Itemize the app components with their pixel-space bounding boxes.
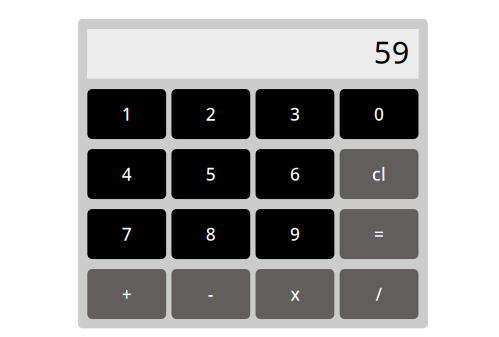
- staticText: 0: [374, 102, 384, 125]
- staticText: 1: [122, 102, 132, 125]
- staticText: /: [376, 282, 383, 305]
- staticText: 3: [290, 102, 300, 125]
- staticText: 59: [374, 31, 410, 72]
- button[interactable]: 0: [340, 89, 418, 139]
- staticText: 7: [122, 222, 132, 245]
- button[interactable]: 6: [256, 149, 334, 199]
- staticText: x: [290, 282, 299, 305]
- button[interactable]: +: [87, 269, 166, 319]
- staticText: -: [208, 282, 214, 305]
- button[interactable]: 5: [171, 149, 250, 199]
- staticText: 2: [206, 102, 216, 125]
- staticText: 5: [206, 162, 216, 185]
- button[interactable]: x: [256, 269, 334, 319]
- button[interactable]: 1: [87, 89, 166, 139]
- button[interactable]: 2: [171, 89, 250, 139]
- button[interactable]: /: [340, 269, 418, 319]
- staticText: 8: [206, 222, 216, 245]
- button[interactable]: 9: [256, 209, 334, 259]
- button[interactable]: cl: [340, 149, 418, 199]
- staticText: +: [122, 282, 132, 305]
- staticText: 9: [290, 222, 300, 245]
- staticText: =: [374, 222, 384, 245]
- button[interactable]: 7: [87, 209, 166, 259]
- button[interactable]: -: [171, 269, 250, 319]
- button[interactable]: 8: [171, 209, 250, 259]
- button[interactable]: 4: [87, 149, 166, 199]
- staticText: 6: [290, 162, 300, 185]
- button[interactable]: =: [340, 209, 418, 259]
- staticText: cl: [372, 162, 386, 185]
- button[interactable]: 3: [256, 89, 334, 139]
- staticText: 4: [122, 162, 132, 185]
